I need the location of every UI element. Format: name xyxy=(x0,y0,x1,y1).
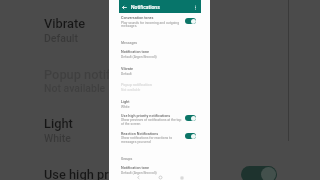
button[interactable] xyxy=(119,97,201,109)
staticText: Notification tone xyxy=(121,50,149,54)
staticText: White xyxy=(44,132,71,144)
staticText: of the screen xyxy=(121,122,141,126)
button[interactable] xyxy=(119,111,201,125)
staticText: Light xyxy=(121,100,130,104)
staticText: Notification tone xyxy=(121,166,149,170)
staticText: Popup notification xyxy=(121,83,152,87)
staticText: Groups xyxy=(121,157,133,161)
staticText: Light xyxy=(44,116,73,131)
button[interactable]: More options xyxy=(191,3,199,11)
staticText: White xyxy=(121,105,130,109)
staticText: Use high prior xyxy=(44,167,124,180)
staticText: Notifications xyxy=(131,4,160,10)
staticText: messages. xyxy=(121,24,138,28)
staticText: Default xyxy=(44,32,78,44)
staticText: Show notifications for reactions to xyxy=(121,136,173,140)
button[interactable]: Back xyxy=(135,175,141,180)
button[interactable] xyxy=(119,129,201,143)
staticText: messages you send xyxy=(121,140,151,144)
staticText: Reaction Notifications xyxy=(121,132,159,136)
staticText: Use high priority notifications xyxy=(121,114,171,118)
button[interactable] xyxy=(119,64,201,76)
button[interactable]: Navigate up xyxy=(120,3,128,11)
button[interactable]: Toggle setting xyxy=(185,133,196,139)
staticText: Popup notification xyxy=(44,67,150,82)
button[interactable] xyxy=(119,163,201,175)
staticText: Messages xyxy=(121,41,138,45)
staticText: Play sounds for incoming and outgoing xyxy=(121,21,180,25)
staticText: Show previews of notifications at the to… xyxy=(121,118,182,122)
staticText: Vibrate xyxy=(121,67,134,71)
button[interactable]: Toggle setting xyxy=(185,18,196,24)
button[interactable] xyxy=(119,80,201,92)
staticText: Default (Argon Broccoli) xyxy=(121,55,157,59)
button[interactable] xyxy=(119,47,201,59)
staticText: Vibrate xyxy=(44,16,86,31)
button[interactable]: Recent apps xyxy=(179,175,185,180)
button[interactable]: Home xyxy=(157,175,163,180)
staticText: Not available xyxy=(121,88,141,92)
staticText: Conversation tones xyxy=(121,16,154,20)
button[interactable]: Toggle setting xyxy=(185,115,196,121)
staticText: Default (Argon Broccoli) xyxy=(121,171,157,175)
staticText: Default xyxy=(121,72,132,76)
staticText: Not available xyxy=(44,82,106,94)
button[interactable] xyxy=(119,14,201,28)
